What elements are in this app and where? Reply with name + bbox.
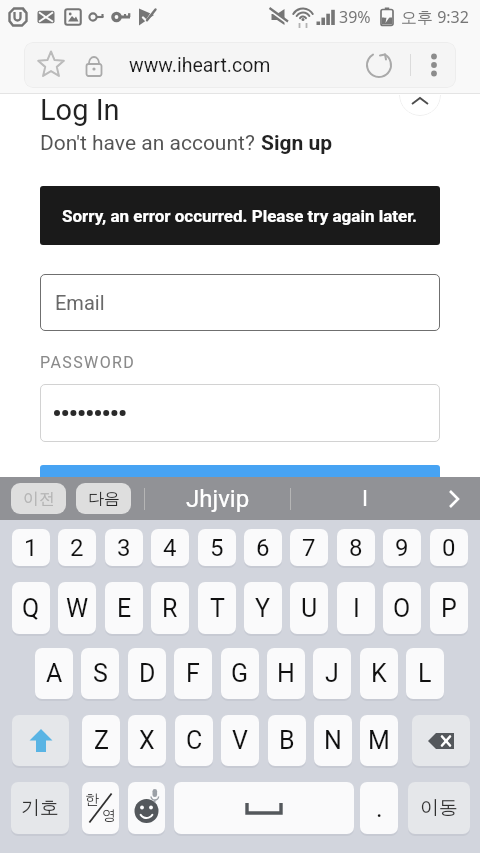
staticText: 5 [210, 534, 224, 562]
button[interactable]: More suggestions [434, 479, 474, 519]
staticText: Email [55, 291, 105, 314]
staticText: R [162, 594, 178, 623]
staticText: 한 [85, 791, 99, 809]
button[interactable]: N [314, 715, 352, 766]
staticText: 0 [442, 534, 456, 562]
button[interactable]: J [313, 648, 351, 699]
staticText: Jhjvip [186, 485, 250, 513]
button[interactable]: V [221, 715, 259, 766]
button[interactable]: H [267, 648, 305, 699]
staticText: D [139, 659, 156, 688]
button[interactable]: 0 [430, 529, 468, 566]
button[interactable]: 8 [337, 529, 375, 566]
button[interactable]: Secure [74, 42, 114, 88]
button[interactable]: 다음 [76, 483, 131, 514]
button[interactable]: K [360, 648, 398, 699]
button[interactable]: T [198, 582, 236, 634]
button[interactable]: Reload [358, 42, 400, 88]
button[interactable]: Collapse [399, 95, 441, 116]
staticText: F [186, 659, 200, 688]
staticText: 이동 [420, 796, 458, 820]
button[interactable]: 6 [244, 529, 282, 566]
staticText: L [418, 659, 432, 688]
button[interactable]: A [35, 648, 73, 699]
button[interactable]: Email [40, 274, 440, 331]
staticText: Q [22, 594, 40, 623]
button[interactable]: . [360, 782, 398, 834]
staticText: B [279, 726, 295, 755]
button[interactable]: 5 [198, 529, 236, 566]
staticText: 기호 [21, 796, 59, 820]
staticText: 39% [339, 6, 371, 28]
button[interactable]: Z [82, 715, 120, 766]
button[interactable]: P [430, 582, 468, 634]
staticText: 1 [24, 534, 38, 562]
button[interactable]: B [268, 715, 306, 766]
button[interactable]: M [360, 715, 398, 766]
staticText: I [353, 594, 360, 623]
button[interactable]: 9 [383, 529, 421, 566]
staticText: 3 [117, 534, 131, 562]
staticText: S [93, 659, 108, 688]
button[interactable]: Shift [12, 715, 69, 766]
staticText: Z [94, 726, 109, 755]
staticText: M [368, 726, 390, 755]
button[interactable]: Emoji [128, 782, 165, 834]
staticText: X [139, 726, 155, 755]
button[interactable]: Q [12, 582, 50, 634]
button[interactable]: 1 [12, 529, 50, 566]
button[interactable]: X [128, 715, 166, 766]
button[interactable] [40, 384, 440, 442]
button[interactable]: 2 [58, 529, 96, 566]
button[interactable]: Bookmark [31, 42, 71, 88]
staticText: PASSWORD [40, 353, 136, 372]
staticText: 오후 9:32 [401, 6, 469, 28]
button[interactable]: U [290, 582, 328, 634]
button[interactable]: Korean English toggle [82, 782, 119, 834]
button[interactable]: D [128, 648, 166, 699]
staticText: G [231, 659, 249, 688]
button[interactable]: 이동 [408, 782, 470, 834]
button[interactable] [40, 465, 440, 477]
button[interactable]: F [174, 648, 212, 699]
button[interactable]: C [175, 715, 213, 766]
staticText: Don't have an account? [40, 131, 261, 156]
button[interactable]: Space [174, 782, 354, 834]
staticText: I [362, 486, 368, 512]
button[interactable]: W [58, 582, 96, 634]
button[interactable]: Y [244, 582, 282, 634]
button[interactable]: 3 [105, 529, 143, 566]
staticText: 8 [349, 534, 363, 562]
button[interactable]: I [337, 582, 375, 634]
staticText: 9 [395, 534, 409, 562]
button[interactable]: G [221, 648, 259, 699]
staticText: www.iheart.com [129, 54, 271, 77]
button[interactable]: Sign up [261, 131, 333, 156]
staticText: 7 [302, 534, 316, 562]
button[interactable]: 기호 [11, 782, 69, 834]
staticText: 6 [256, 534, 270, 562]
button[interactable]: 이전 [11, 483, 66, 514]
button[interactable]: R [151, 582, 189, 634]
staticText: Sorry, an error occurred. Please try aga… [62, 206, 418, 226]
button[interactable]: More options [414, 42, 454, 88]
button[interactable]: 7 [290, 529, 328, 566]
staticText: N [324, 726, 342, 755]
staticText: 영 [102, 807, 116, 825]
staticText: W [66, 594, 89, 623]
staticText: T [210, 594, 225, 623]
staticText: H [277, 659, 295, 688]
staticText: Log In [40, 95, 120, 127]
button[interactable]: S [81, 648, 119, 699]
button[interactable]: O [383, 582, 421, 634]
staticText: Y [255, 594, 271, 623]
staticText: V [232, 726, 248, 755]
staticText: O [393, 594, 411, 623]
staticText: A [46, 659, 63, 688]
staticText: J [325, 659, 339, 688]
button[interactable]: E [105, 582, 143, 634]
staticText: U [301, 594, 318, 623]
button[interactable]: 4 [151, 529, 189, 566]
button[interactable]: Backspace [412, 715, 470, 766]
button[interactable]: L [406, 648, 444, 699]
